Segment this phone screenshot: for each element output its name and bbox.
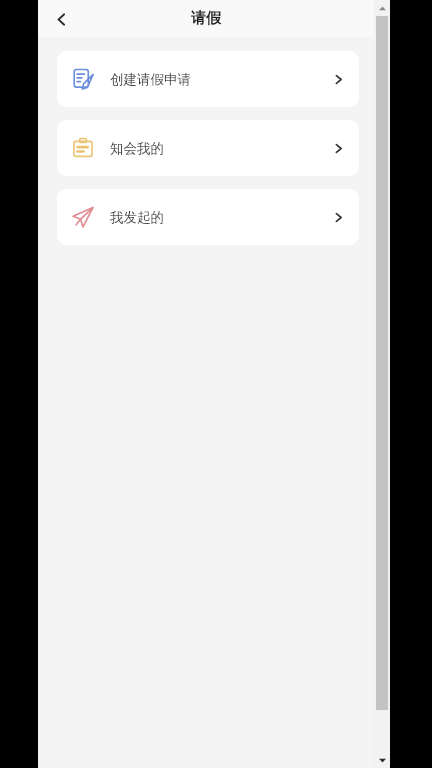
button[interactable]: 我发起的 (57, 189, 359, 245)
button[interactable]: 创建请假申请 (57, 51, 359, 107)
staticText: 请假 (38, 9, 374, 28)
staticText: 我发起的 (110, 209, 164, 226)
button[interactable]: 知会我的 (57, 120, 359, 176)
staticText: 创建请假申请 (110, 71, 191, 88)
button[interactable]: Back (45, 3, 77, 35)
button[interactable]: Scroll up (374, 0, 390, 16)
staticText: 知会我的 (110, 140, 164, 157)
button[interactable]: Scroll down (374, 752, 390, 768)
